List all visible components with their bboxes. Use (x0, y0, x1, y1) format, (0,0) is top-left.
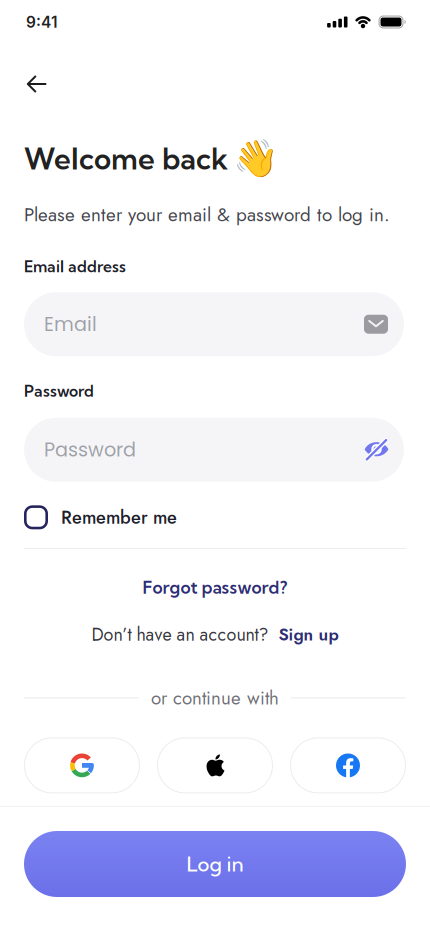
staticText: Welcome back (24, 140, 228, 177)
button[interactable]: Sign up (278, 622, 338, 647)
staticText: Email (44, 311, 97, 338)
staticText: Email address (24, 257, 126, 276)
button[interactable]: Log in (24, 831, 406, 897)
staticText: or continue with (151, 684, 279, 711)
button[interactable]: Email (24, 292, 404, 356)
staticText: 9:41 (26, 13, 58, 31)
staticText: Please enter your email & password to lo… (24, 201, 390, 228)
button[interactable] (0, 75, 46, 92)
button[interactable] (157, 737, 273, 793)
button[interactable]: Remember me (0, 504, 177, 530)
button[interactable] (290, 737, 406, 793)
staticText: Sign up (278, 622, 338, 647)
staticText: Remember me (61, 504, 177, 530)
staticText: Forgot password? (142, 576, 287, 598)
button[interactable]: Forgot password? (0, 576, 430, 598)
button[interactable] (24, 737, 140, 793)
staticText: Password (44, 436, 136, 463)
button[interactable]: Password (24, 418, 404, 482)
staticText: Log in (186, 851, 243, 876)
staticText: 👋 (233, 137, 279, 180)
staticText: Password (24, 381, 94, 401)
staticText: Don’t have an account? (91, 622, 268, 647)
